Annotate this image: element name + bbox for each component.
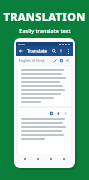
button[interactable]: Search — [51, 48, 57, 54]
button[interactable]: More options — [65, 48, 71, 54]
staticText: Translate — [27, 48, 48, 54]
staticText: English — [19, 58, 31, 63]
staticText: TRANSLATION — [3, 9, 86, 24]
button[interactable]: Copy translation — [18, 108, 71, 154]
staticText: Easily translate text — [19, 27, 71, 34]
button[interactable]: Listen — [56, 111, 61, 116]
button[interactable]: Share — [65, 58, 70, 63]
button[interactable] — [18, 66, 71, 106]
button[interactable]: English — [16, 56, 73, 65]
staticText: Hindi — [36, 58, 45, 63]
button[interactable]: Edit — [53, 58, 58, 63]
button[interactable]: Copy — [59, 58, 64, 63]
button[interactable]: Settings — [60, 155, 68, 163]
button[interactable]: Back — [18, 48, 24, 54]
button[interactable]: Voice input — [58, 48, 64, 54]
button[interactable]: Home — [21, 155, 29, 163]
button[interactable]: Share translation — [63, 111, 68, 116]
button[interactable]: Copy translation — [49, 111, 54, 116]
button[interactable]: Favourites — [47, 155, 55, 163]
button[interactable]: History — [34, 155, 42, 163]
